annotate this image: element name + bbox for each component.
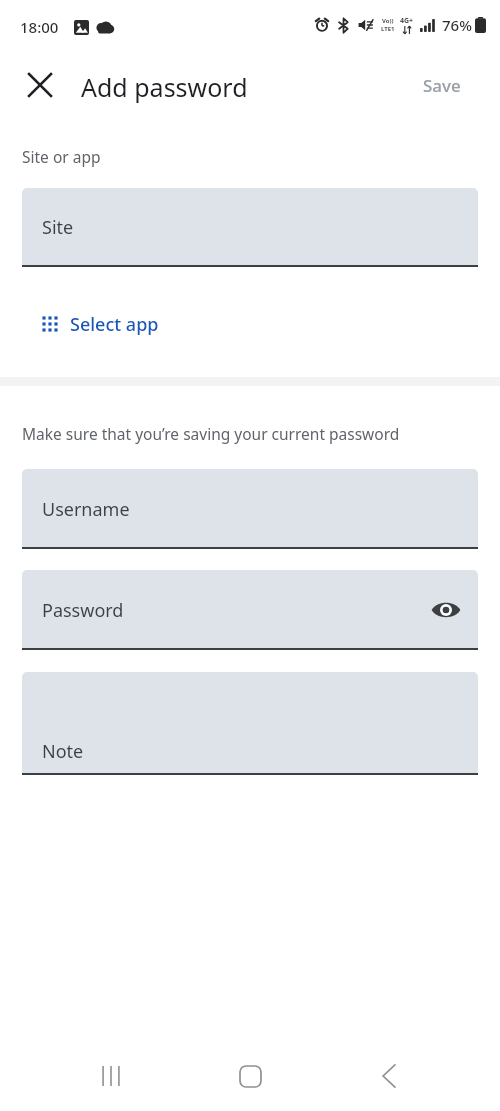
staticText: Username [42,497,130,522]
staticText: 76% [442,15,472,35]
staticText: Save [423,74,461,97]
staticText: Site or app [22,146,101,167]
staticText: 18:00 [20,17,59,37]
staticText: 4G+ [400,16,414,26]
button[interactable]: Site [22,188,478,267]
button[interactable]: Select app [30,303,170,345]
button[interactable]: Close [16,61,64,109]
staticText: Password [42,598,124,623]
staticText: Site [42,215,74,240]
button[interactable]: Show password [422,586,470,634]
button[interactable]: Home [217,1041,283,1111]
button[interactable]: Password [22,570,478,650]
button[interactable]: Username [22,469,478,549]
button[interactable]: Save [400,64,484,106]
staticText: Select app [70,312,159,337]
button[interactable]: Back [356,1041,422,1111]
staticText: Make sure that you’re saving your curren… [22,423,400,444]
staticText: Vo)) [382,17,394,25]
button[interactable]: Recents [78,1041,144,1111]
button[interactable]: Note [22,672,478,775]
staticText: Add password [81,70,248,104]
staticText: Note [42,739,84,764]
staticText: LTE1 [381,25,395,33]
